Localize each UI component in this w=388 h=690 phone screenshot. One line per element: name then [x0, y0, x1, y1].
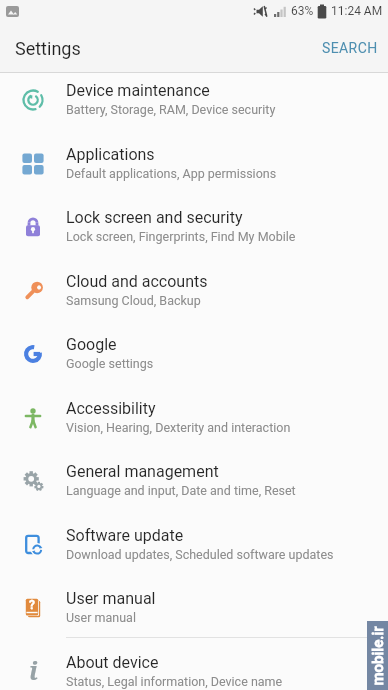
staticText: Samsung Cloud, Backup: [66, 293, 201, 308]
staticText: User manual: [66, 589, 156, 608]
staticText: 11:24 AM: [331, 4, 383, 18]
staticText: Language and input, Date and time, Reset: [66, 483, 296, 498]
staticText: Google settings: [66, 356, 154, 371]
staticText: Lock screen and security: [66, 208, 243, 227]
button[interactable]: General management: [0, 454, 388, 518]
staticText: User manual: [66, 610, 136, 625]
staticText: Applications: [66, 145, 155, 164]
staticText: i: [29, 653, 38, 683]
staticText: Lock screen, Fingerprints, Find My Mobil…: [66, 229, 296, 244]
staticText: 63%: [291, 4, 314, 18]
staticText: Software update: [66, 526, 184, 545]
staticText: Status, Legal information, Device name: [66, 674, 283, 689]
button[interactable]: i: [0, 645, 388, 690]
staticText: About device: [66, 653, 159, 672]
staticText: Cloud and accounts: [66, 272, 208, 291]
staticText: Device maintenance: [66, 81, 210, 100]
button[interactable]: Accessibility: [0, 391, 388, 454]
staticText: Battery, Storage, RAM, Device security: [66, 102, 276, 117]
button[interactable]: Google: [0, 327, 388, 391]
staticText: ?: [29, 598, 35, 612]
button[interactable]: ?: [0, 581, 388, 645]
staticText: Settings: [15, 38, 81, 59]
button[interactable]: Lock screen and security: [0, 200, 388, 264]
staticText: General management: [66, 462, 219, 481]
button[interactable]: Applications: [0, 137, 388, 200]
staticText: Accessibility: [66, 399, 156, 418]
staticText: mobile.ir: [368, 621, 386, 690]
button[interactable]: Software update: [0, 518, 388, 581]
staticText: Google: [66, 335, 117, 354]
staticText: Download updates, Scheduled software upd…: [66, 547, 334, 562]
staticText: Default applications, App permissions: [66, 166, 277, 181]
staticText: SEARCH: [322, 40, 378, 56]
button[interactable]: Cloud and accounts: [0, 264, 388, 327]
button[interactable]: Device maintenance: [0, 73, 388, 137]
button[interactable]: SEARCH: [322, 40, 378, 56]
staticText: Vision, Hearing, Dexterity and interacti…: [66, 420, 291, 435]
